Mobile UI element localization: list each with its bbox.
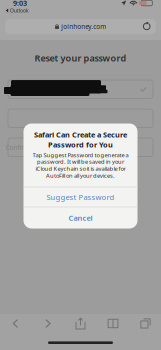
button[interactable]: Cancel [23, 207, 137, 228]
staticText: password. It will be saved in your [37, 158, 124, 165]
button[interactable]: Back [5, 317, 26, 329]
button[interactable]: Forward [37, 317, 58, 329]
button[interactable]: Bookmarks [102, 317, 123, 329]
staticText: Confirm password [5, 143, 62, 152]
button[interactable]: Suggest Password [23, 187, 137, 207]
staticText: 9:03 [13, 0, 27, 8]
button[interactable]: Tabs [135, 317, 156, 329]
staticText: Outlook [10, 7, 29, 14]
staticText: AutoFill on all your devices. [46, 172, 115, 179]
staticText: joinhoney.com [61, 22, 106, 31]
staticText: Suggest Password [46, 192, 114, 202]
button[interactable]: Share [70, 317, 91, 329]
staticText: Cancel [68, 213, 92, 223]
staticText: Tap Suggest Password to generate a [32, 151, 128, 159]
button[interactable]: joinhoney.com [5, 19, 156, 34]
staticText: iCloud Keychain so it is available for [35, 165, 125, 172]
staticText: Reset your password [34, 52, 126, 64]
staticText: Password for You [48, 140, 113, 150]
staticText: Safari Can Create a Secure [34, 130, 127, 140]
